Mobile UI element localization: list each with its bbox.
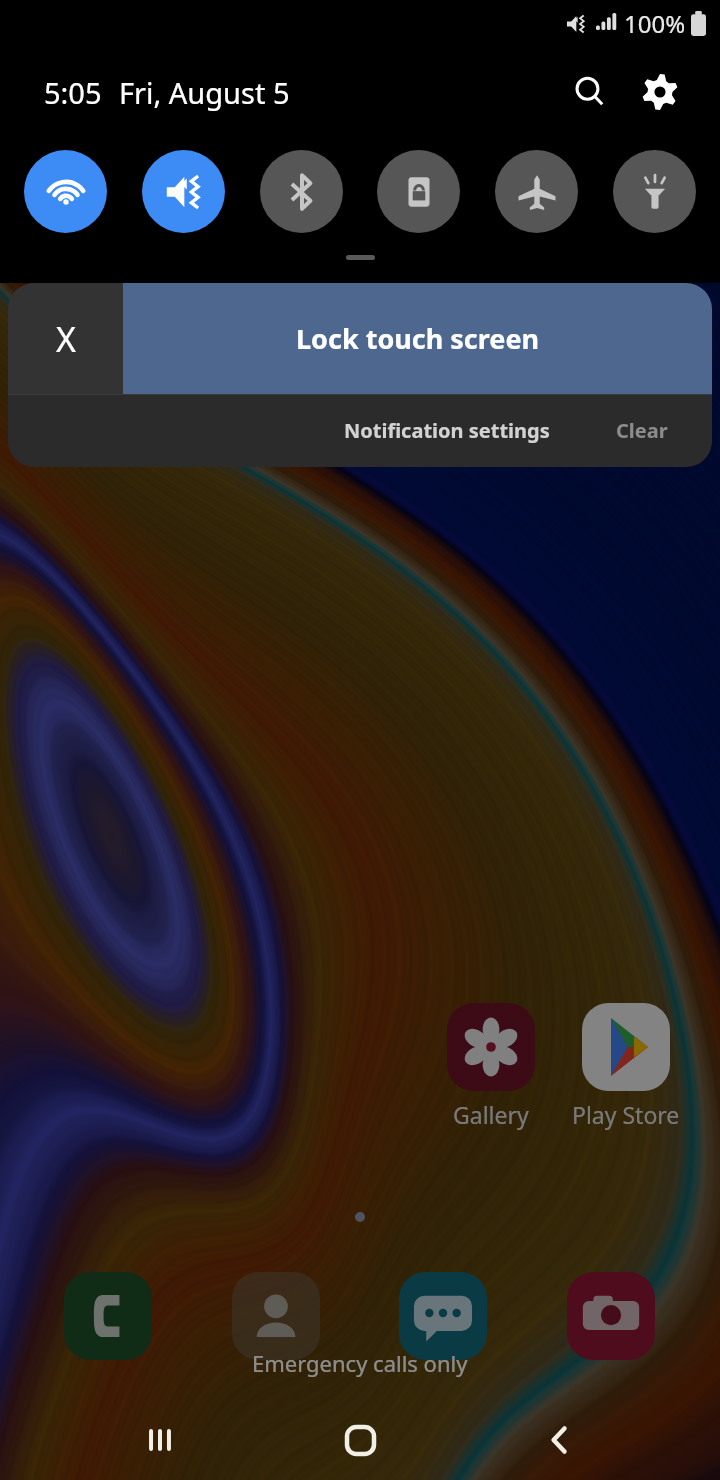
button[interactable]: Dismiss notification [8,283,123,394]
staticText: Clear [616,417,668,444]
button[interactable]: Back [525,1405,595,1475]
button[interactable]: Torch [613,150,696,233]
button[interactable]: Search [564,66,616,118]
button[interactable]: Flight mode [495,150,578,233]
button[interactable]: Wi-Fi [24,150,107,233]
staticText: Gallery [453,1099,529,1130]
staticText: Notification settings [344,417,550,444]
button[interactable]: Contacts [232,1272,320,1360]
staticText: 5:05 [44,73,102,112]
button[interactable]: Notification settings [336,403,558,458]
button[interactable]: Gallery [447,1003,535,1091]
button[interactable]: Play Store [582,1003,670,1091]
button[interactable]: Messages [399,1272,487,1360]
button[interactable]: Home [325,1405,395,1475]
staticText: X [56,316,76,362]
button[interactable]: Home screen page 1 [355,1212,365,1222]
staticText: Fri, August 5 [119,73,290,112]
button[interactable]: Screen lock [377,150,460,233]
button[interactable]: Sound mode [142,150,225,233]
button[interactable]: Clear [608,403,676,458]
staticText: Play Store [572,1099,680,1130]
button[interactable]: Lock touch screen [123,283,712,394]
button[interactable]: Camera [567,1272,655,1360]
button[interactable]: Phone [64,1272,152,1360]
button[interactable]: Bluetooth [260,150,343,233]
button[interactable]: Recents [125,1405,195,1475]
staticText: Lock touch screen [296,320,540,357]
staticText: 100% [624,7,686,40]
button[interactable]: Settings [634,66,686,118]
staticText: Emergency calls only [252,1348,468,1378]
